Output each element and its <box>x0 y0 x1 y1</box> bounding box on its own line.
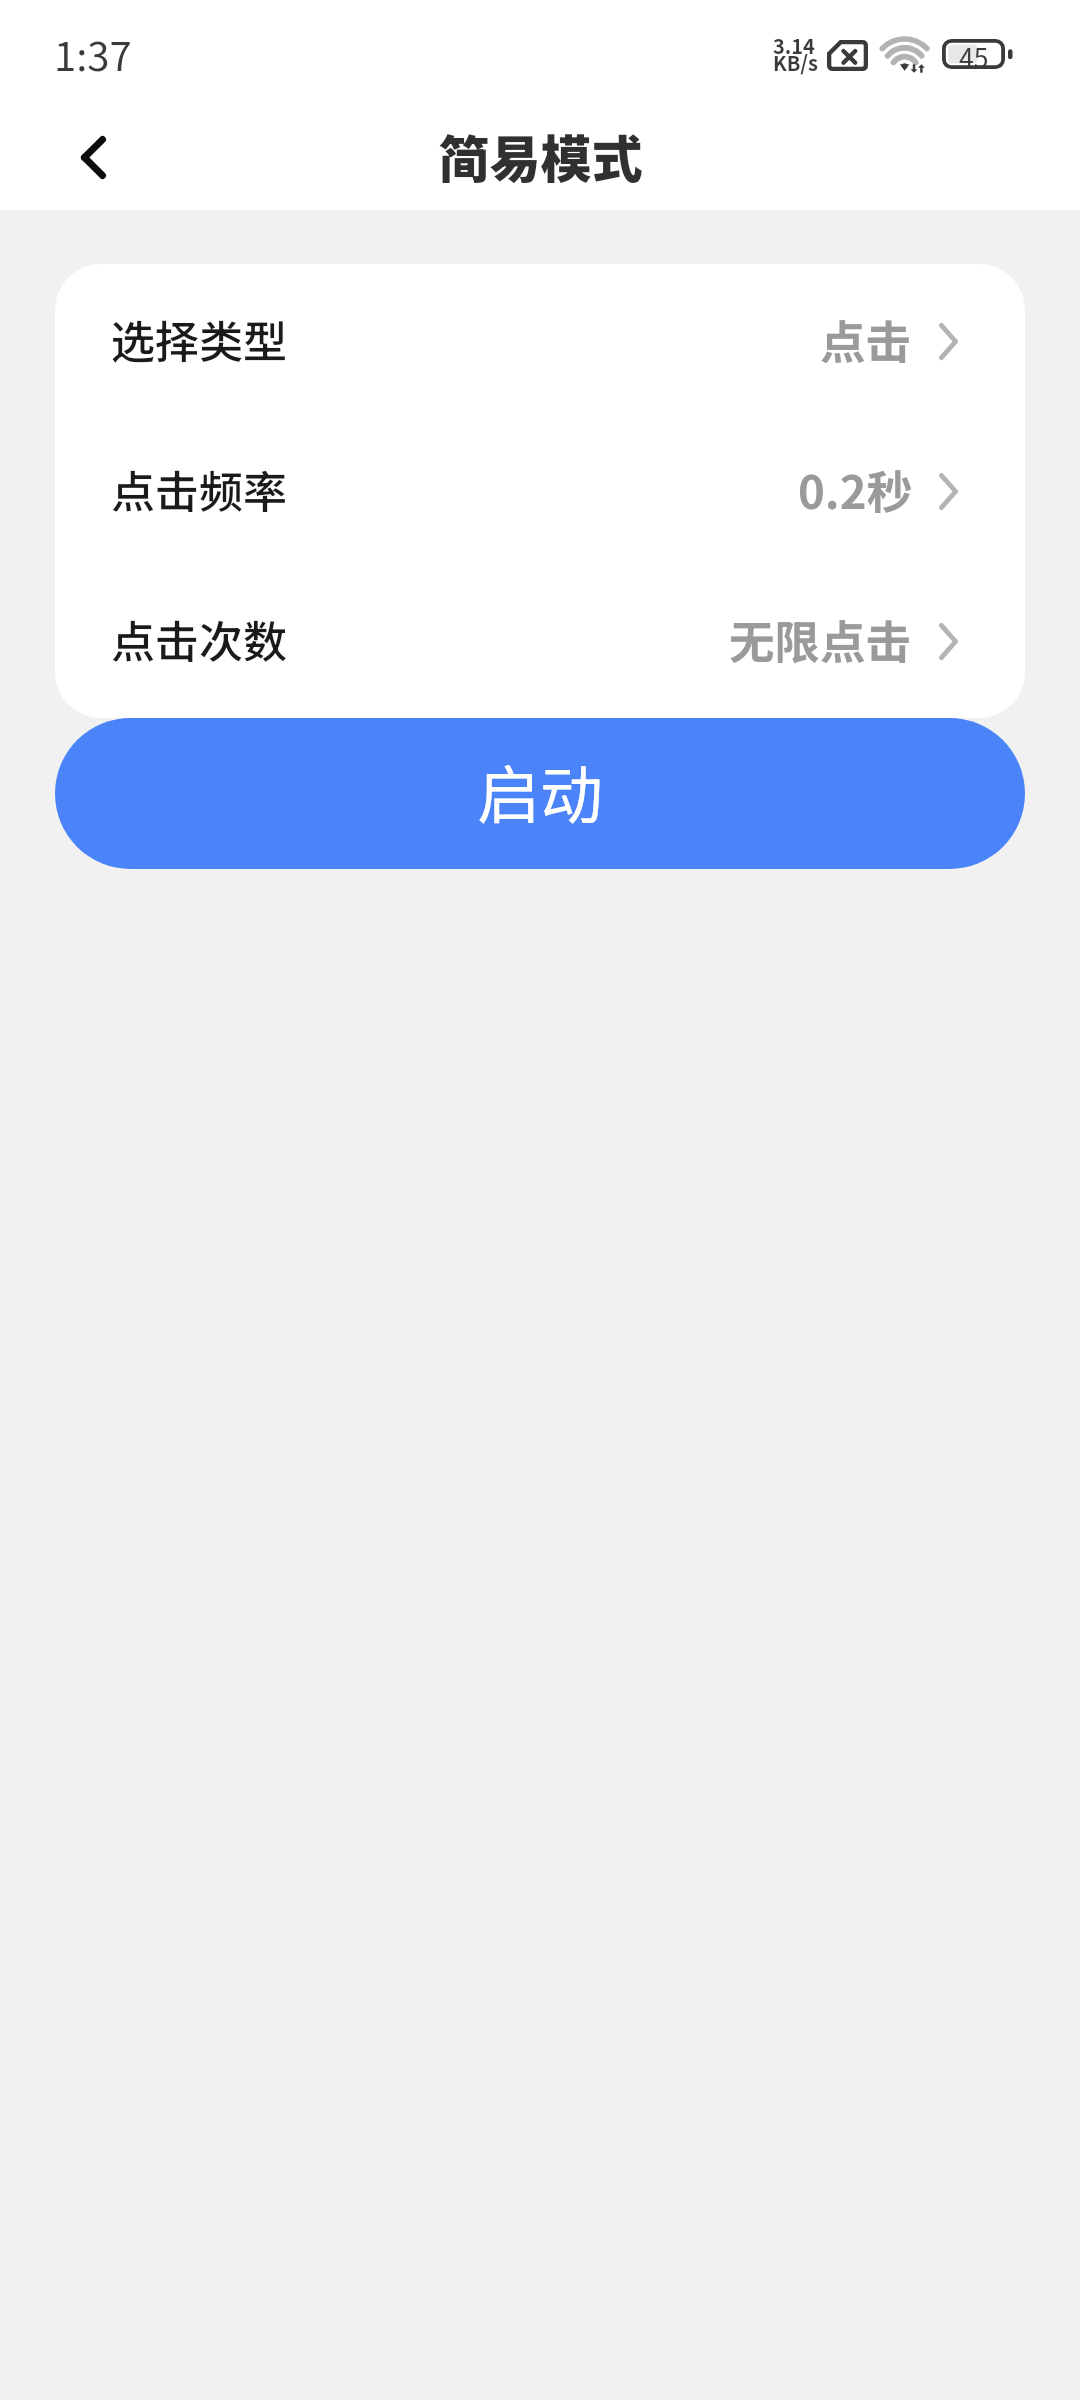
button[interactable]: 选择类型 <box>55 268 1025 418</box>
staticText: 无限点击 <box>729 606 912 672</box>
button[interactable]: 点击频率 <box>55 418 1025 568</box>
staticText: 45 <box>959 37 989 68</box>
staticText: 0.2秒 <box>798 456 912 522</box>
staticText: 点击 <box>820 306 912 372</box>
button[interactable]: Back <box>57 112 129 202</box>
staticText: 点击次数 <box>111 607 287 671</box>
staticText: 3.14 <box>773 31 815 60</box>
staticText: 1:37 <box>54 25 132 83</box>
staticText: 点击频率 <box>111 457 287 521</box>
staticText: 启动 <box>477 745 603 836</box>
button[interactable]: 启动 <box>55 718 1025 869</box>
staticText: 简易模式 <box>438 119 643 193</box>
staticText: KB/s <box>773 48 818 77</box>
button[interactable]: 点击次数 <box>55 568 1025 718</box>
staticText: 选择类型 <box>111 307 287 371</box>
